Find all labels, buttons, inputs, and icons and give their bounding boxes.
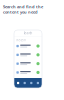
button[interactable] (16, 52, 40, 57)
button[interactable] (16, 61, 40, 66)
staticText: Recent (16, 38, 26, 42)
staticText: Search and find the content you need (3, 4, 43, 15)
staticText: Search (23, 31, 32, 35)
button[interactable]: Tab (22, 79, 27, 86)
button[interactable]: Tab (29, 79, 34, 86)
button[interactable]: Tab (35, 79, 40, 86)
button[interactable]: Tab (16, 79, 21, 86)
button[interactable] (16, 43, 40, 49)
button[interactable] (16, 70, 40, 75)
